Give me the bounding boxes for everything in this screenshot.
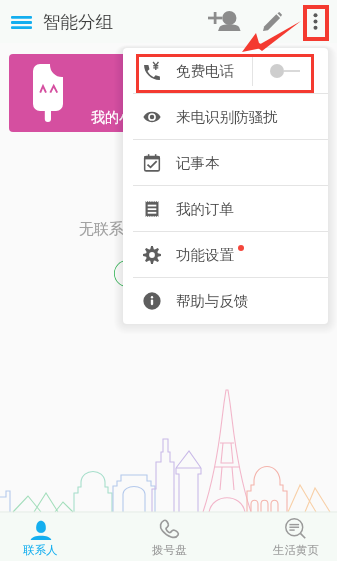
button[interactable]: Add contact [197,0,251,43]
button[interactable]: 我的小伙伴 [9,54,169,132]
button[interactable]: 我的订单 [123,186,328,232]
button[interactable]: 生活黄页 [225,513,337,561]
staticText: 联系人 [23,543,58,557]
staticText: 拨号盘 [152,543,187,557]
button[interactable]: More options [294,0,337,43]
button[interactable]: 帮助与反馈 [123,278,328,324]
staticText: 记事本 [176,154,220,172]
button[interactable]: 添加联系人 [114,260,224,287]
button[interactable]: Toggle free calls [253,48,328,94]
staticText: 帮助与反馈 [176,292,249,310]
button[interactable]: 记事本 [123,140,328,186]
button[interactable]: 拨号盘 [113,513,225,561]
button[interactable]: 来电识别防骚扰 [123,94,328,140]
button[interactable]: Open navigation drawer [0,1,42,43]
button[interactable]: Edit [251,0,294,43]
staticText: 添加联系人 [137,266,202,282]
staticText: 功能设置 [176,246,234,264]
staticText: 我的小伙伴 [91,109,161,127]
button[interactable]: 免费电话 [123,48,328,94]
staticText: 生活黄页 [273,543,319,557]
button[interactable]: 功能设置 [123,232,328,278]
button[interactable]: 联系人 [0,513,113,561]
staticText: 智能分组 [43,11,113,33]
staticText: 我的订单 [176,200,234,218]
staticText: 来电识别防骚扰 [176,108,278,126]
staticText: 无联系人，点击按钮添加吧 [79,220,259,239]
staticText: 免费电话 [176,62,234,80]
